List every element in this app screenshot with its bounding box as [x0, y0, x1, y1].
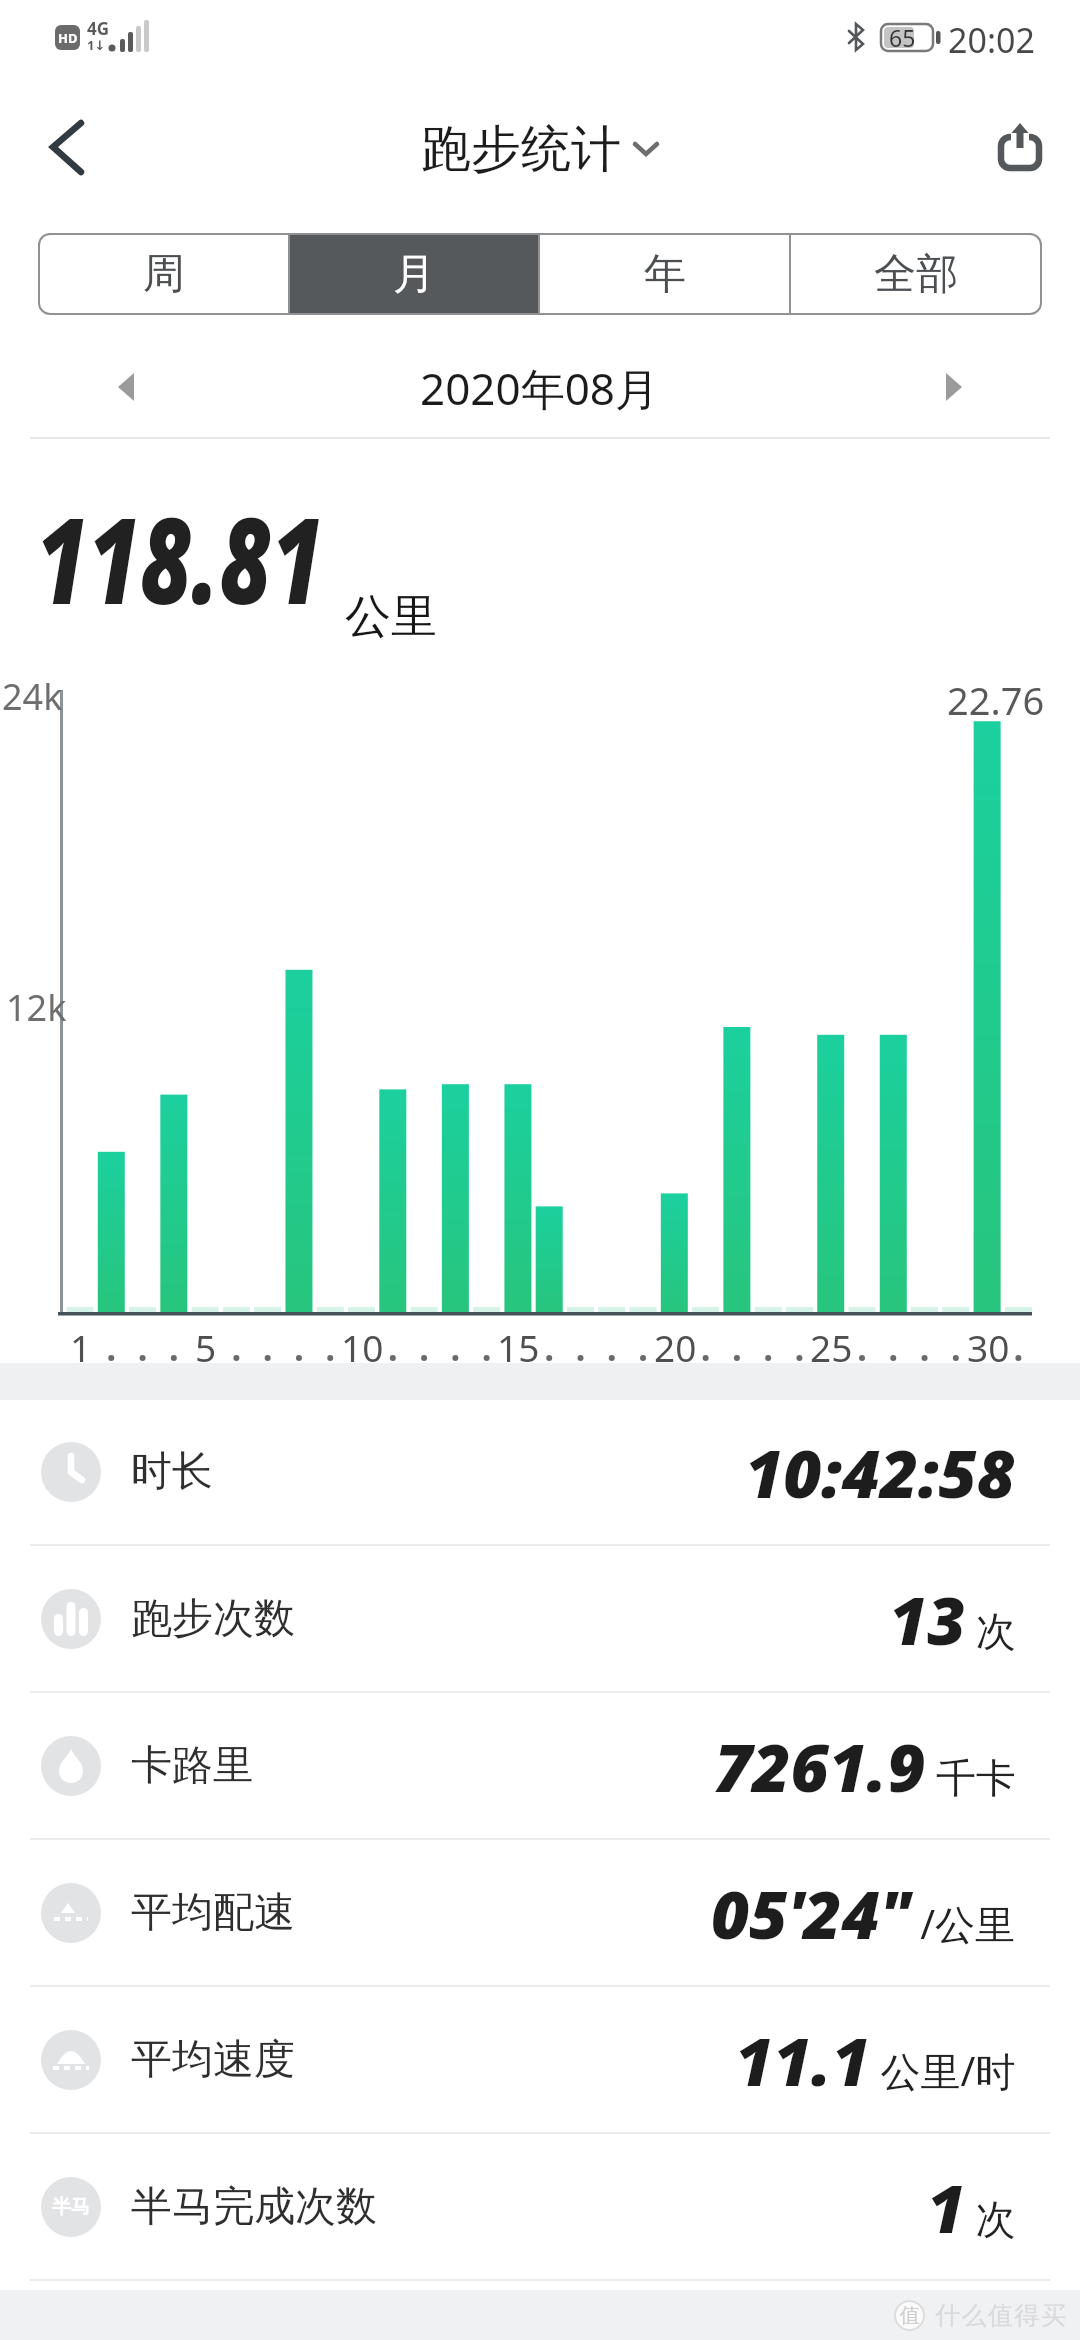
staticText: 11.1 公里/时 — [735, 2015, 1016, 2105]
button[interactable]: 平均配速 — [0, 1839, 1080, 1986]
staticText: 118.81 — [36, 478, 324, 639]
staticText: 跑步统计 — [421, 118, 621, 180]
button[interactable]: 平均速度 — [0, 1986, 1080, 2133]
staticText: 时长 — [131, 1446, 213, 1498]
staticText: 公里 — [345, 588, 437, 646]
staticText: 22.76 — [947, 674, 1045, 726]
button[interactable]: 半马 — [0, 2133, 1080, 2280]
staticText: 什么值得买 — [935, 2300, 1068, 2331]
staticText: 值 — [900, 2303, 920, 2328]
button[interactable] — [943, 371, 967, 403]
staticText: 月 — [393, 248, 435, 301]
staticText: 1 — [70, 1322, 92, 1372]
staticText: 12k — [6, 983, 67, 1032]
staticText: 全部 — [874, 248, 958, 301]
staticText: 5 — [195, 1322, 217, 1372]
staticText: 10:42:58 — [745, 1427, 1016, 1517]
staticText: 13 次 — [889, 1574, 1016, 1664]
staticText: 10 — [341, 1322, 384, 1372]
button[interactable]: 周 — [40, 235, 288, 313]
button[interactable]: 卡路里 — [0, 1692, 1080, 1839]
button[interactable]: 时长 — [0, 1398, 1080, 1545]
staticText: 4G — [87, 17, 110, 40]
staticText: 2020年08月 — [420, 358, 660, 418]
staticText: 半马完成次数 — [131, 2181, 377, 2233]
staticText: 30 — [967, 1322, 1010, 1372]
button[interactable] — [998, 123, 1042, 169]
staticText: 24k — [2, 672, 63, 721]
button[interactable]: 月 — [290, 235, 538, 313]
staticText: 7261.9 千卡 — [714, 1721, 1016, 1811]
staticText: 半马 — [52, 2195, 90, 2219]
button[interactable]: 跑步次数 — [0, 1545, 1080, 1692]
staticText: 65 — [889, 22, 916, 53]
button[interactable]: 年 — [540, 235, 789, 313]
staticText: 1 次 — [927, 2162, 1016, 2252]
button[interactable] — [113, 371, 137, 403]
staticText: 15 — [497, 1322, 540, 1372]
staticText: 平均配速 — [131, 1887, 295, 1939]
staticText: 20:02 — [948, 17, 1035, 63]
staticText: 年 — [644, 248, 686, 301]
staticText: 跑步次数 — [131, 1593, 295, 1645]
staticText: HD — [58, 29, 78, 47]
button[interactable]: 全部 — [791, 235, 1040, 313]
staticText: 平均速度 — [131, 2034, 295, 2086]
staticText: 05'24" /公里 — [711, 1868, 1016, 1958]
staticText: 卡路里 — [131, 1740, 254, 1792]
staticText: 周 — [143, 248, 185, 301]
staticText: 25 — [810, 1322, 853, 1372]
button[interactable]: 跑步统计 — [421, 118, 659, 180]
staticText: 20 — [654, 1322, 697, 1372]
staticText: 1↓ — [87, 36, 106, 54]
button[interactable] — [45, 115, 90, 180]
